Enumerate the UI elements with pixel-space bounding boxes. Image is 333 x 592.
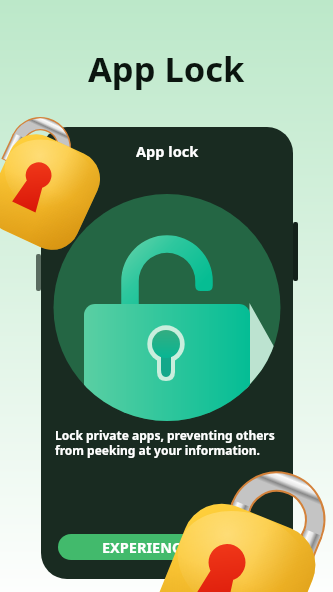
button[interactable]: EXPERIENCE [58,534,234,560]
staticText: Lock private apps, preventing others fro… [55,427,275,459]
staticText: EXPERIENCE [102,537,190,557]
staticText: App lock [136,141,199,161]
staticText: App Lock [88,45,245,92]
